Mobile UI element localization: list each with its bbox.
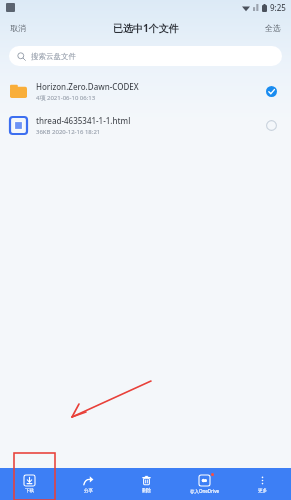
staticText: 36KB 2020-12-16 18:21 xyxy=(36,128,101,136)
staticText: 存入OneDrive xyxy=(190,488,219,494)
staticText: 删除 xyxy=(142,488,151,494)
button[interactable]: 搜索云盘文件 xyxy=(9,46,282,66)
button[interactable]: Horizon.Zero.Dawn-CODEX xyxy=(0,74,291,108)
button[interactable]: 更多 xyxy=(233,468,291,500)
staticText: 全选 xyxy=(265,23,281,33)
button[interactable]: 删除 xyxy=(117,468,175,500)
staticText: Horizon.Zero.Dawn-CODEX xyxy=(36,81,139,92)
button[interactable]: 全选 xyxy=(255,18,291,38)
staticText: 已选中1个文件 xyxy=(113,21,179,35)
button[interactable]: 存入OneDrive xyxy=(175,468,233,500)
button[interactable]: thread-4635341-1-1.html xyxy=(0,108,291,142)
staticText: thread-4635341-1-1.html xyxy=(36,115,131,126)
staticText: 更多 xyxy=(258,488,267,494)
button[interactable]: 取消 xyxy=(0,18,36,38)
button[interactable]: Selected xyxy=(261,81,281,101)
staticText: 9:25 xyxy=(270,2,286,13)
staticText: 分享 xyxy=(84,488,93,494)
button[interactable]: 分享 xyxy=(59,468,117,500)
staticText: 4项 2021-06-10 06:13 xyxy=(36,94,96,102)
button[interactable]: Select xyxy=(261,115,281,135)
staticText: 取消 xyxy=(10,23,26,33)
staticText: 搜索云盘文件 xyxy=(31,52,76,61)
staticText: 下载 xyxy=(25,488,34,494)
button[interactable]: 下载 xyxy=(0,468,59,500)
